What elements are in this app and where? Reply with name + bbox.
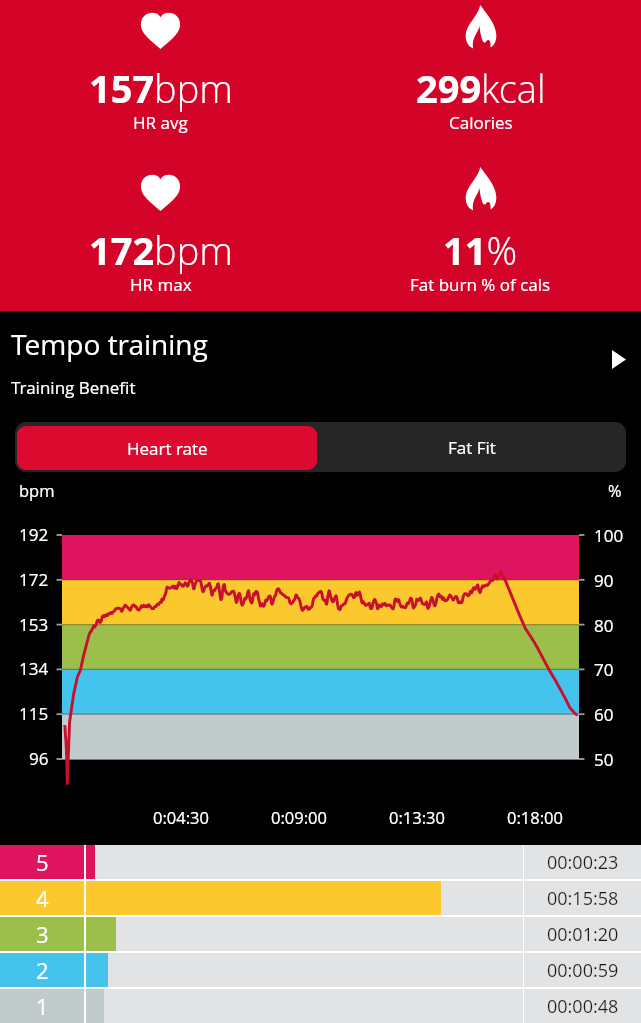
staticText: Fat Fit xyxy=(448,436,496,459)
staticText: 134 xyxy=(19,657,49,680)
staticText: 0:13:30 xyxy=(389,806,445,828)
staticText: 50 xyxy=(594,748,614,771)
staticText: 115 xyxy=(19,702,49,725)
staticText: 90 xyxy=(594,569,614,592)
staticText: 00:15:58 xyxy=(547,886,619,911)
staticText: HR avg xyxy=(133,111,188,134)
staticText: Fat burn % of cals xyxy=(410,273,551,296)
staticText: 0:09:00 xyxy=(271,806,327,828)
staticText: Training Benefit xyxy=(11,376,136,399)
staticText: HR max xyxy=(130,273,192,296)
button[interactable]: 3 xyxy=(0,917,641,951)
staticText: Heart rate xyxy=(127,437,208,460)
button[interactable]: 2 xyxy=(0,953,641,987)
staticText: Tempo training xyxy=(11,325,208,363)
staticText: 2 xyxy=(36,955,49,985)
staticText: bpm xyxy=(19,479,55,501)
staticText: 4 xyxy=(36,883,49,913)
staticText: 157bpm xyxy=(89,62,233,114)
button[interactable]: 1 xyxy=(0,989,641,1023)
staticText: 299kcal xyxy=(416,62,546,114)
staticText: 96 xyxy=(29,747,49,770)
staticText: 00:00:23 xyxy=(547,850,619,875)
staticText: 80 xyxy=(594,614,614,637)
staticText: 172 xyxy=(19,568,49,591)
staticText: 153 xyxy=(19,613,49,636)
staticText: 60 xyxy=(594,703,614,726)
staticText: 11% xyxy=(443,224,518,276)
staticText: 70 xyxy=(594,658,614,681)
staticText: 1 xyxy=(36,991,49,1021)
staticText: 192 xyxy=(19,523,49,546)
staticText: % xyxy=(608,479,622,501)
button[interactable]: Heart rate xyxy=(17,426,317,470)
staticText: Calories xyxy=(449,111,513,134)
staticText: 0:04:30 xyxy=(153,806,209,828)
staticText: 172bpm xyxy=(89,224,233,276)
staticText: 5 xyxy=(36,847,49,877)
staticText: 00:01:20 xyxy=(547,922,619,947)
staticText: 00:00:59 xyxy=(547,958,619,983)
staticText: 100 xyxy=(594,524,624,547)
staticText: 3 xyxy=(36,919,49,949)
button[interactable]: 4 xyxy=(0,881,641,915)
button[interactable]: 5 xyxy=(0,845,641,879)
staticText: 0:18:00 xyxy=(507,806,563,828)
staticText: 00:00:48 xyxy=(547,994,619,1019)
button[interactable]: Play xyxy=(598,336,640,382)
button[interactable]: Fat Fit xyxy=(317,422,626,472)
